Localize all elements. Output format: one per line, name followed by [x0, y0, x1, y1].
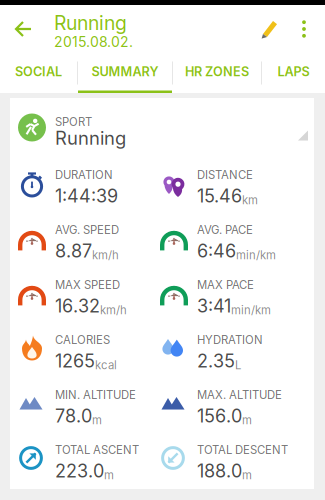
button[interactable]: More options	[289, 6, 325, 52]
staticText: 223.0	[55, 460, 104, 482]
staticText: km/h	[100, 303, 127, 317]
staticText: min/km	[231, 303, 271, 317]
staticText: m	[242, 413, 252, 427]
staticText: 15.46	[197, 185, 242, 207]
button[interactable]: HR ZONES	[173, 53, 261, 93]
staticText: Running	[55, 127, 126, 149]
staticText: 6:46	[197, 240, 236, 262]
staticText: DURATION	[55, 168, 113, 182]
staticText: DISTANCE	[197, 168, 253, 182]
staticText: AVG. PACE	[197, 223, 253, 237]
staticText: 156.0	[197, 405, 242, 427]
button[interactable]: LAPS	[262, 53, 325, 93]
button[interactable]: Edit	[249, 6, 289, 52]
staticText: CALORIES	[55, 333, 110, 347]
staticText: 78.0	[55, 405, 92, 427]
staticText: kcal	[95, 358, 117, 372]
staticText: Running	[54, 11, 127, 35]
staticText: m	[242, 468, 252, 482]
staticText: HYDRATION	[197, 333, 263, 347]
staticText: 8.87	[55, 240, 92, 262]
staticText: km/h	[92, 248, 119, 262]
staticText: min/km	[236, 248, 276, 262]
staticText: 2015.08.02.	[54, 33, 133, 50]
staticText: m	[104, 468, 114, 482]
staticText: MAX SPEED	[55, 278, 120, 292]
staticText: HR ZONES	[185, 64, 249, 79]
staticText: m	[92, 413, 102, 427]
staticText: SUMMARY	[91, 64, 158, 79]
button[interactable]: Back	[0, 5, 54, 53]
staticText: TOTAL ASCENT	[55, 443, 139, 457]
staticText: SOCIAL	[15, 64, 62, 79]
staticText: SPORT	[55, 115, 92, 129]
staticText: LAPS	[277, 64, 309, 79]
staticText: 3:41	[197, 295, 231, 317]
staticText: 16.32	[55, 295, 100, 317]
staticText: AVG. SPEED	[55, 223, 119, 237]
staticText: L	[235, 358, 241, 372]
staticText: MIN. ALTITUDE	[55, 388, 136, 402]
staticText: 1:44:39	[55, 185, 118, 207]
staticText: 2.35	[197, 350, 235, 372]
staticText: 1265	[55, 350, 95, 372]
staticText: TOTAL DESCENT	[197, 443, 288, 457]
staticText: MAX PACE	[197, 278, 254, 292]
button[interactable]: SUMMARY	[78, 53, 172, 93]
button[interactable]: SOCIAL	[0, 53, 77, 93]
staticText: MAX. ALTITUDE	[197, 388, 282, 402]
staticText: 188.0	[197, 460, 242, 482]
staticText: km	[242, 193, 258, 207]
